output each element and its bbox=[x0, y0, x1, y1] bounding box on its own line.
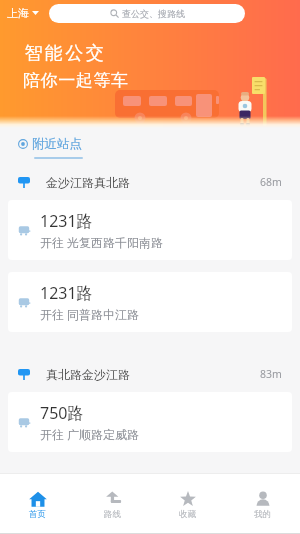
staticText: 1231路 bbox=[40, 210, 93, 232]
staticText: 83m bbox=[260, 367, 282, 381]
staticText: 68m bbox=[260, 175, 282, 189]
button[interactable]: 750路 bbox=[8, 392, 292, 452]
staticText: 金沙江路真北路 bbox=[46, 175, 130, 190]
staticText: 首页 bbox=[29, 509, 46, 520]
button[interactable]: 附近站点 bbox=[18, 136, 82, 152]
staticText: 路线 bbox=[104, 509, 121, 520]
button[interactable]: 上海 bbox=[0, 4, 43, 22]
staticText: 1231路 bbox=[40, 282, 93, 304]
staticText: 查公交、搜路线 bbox=[122, 8, 185, 19]
button[interactable]: 路线 bbox=[75, 474, 150, 533]
button[interactable]: 我的 bbox=[225, 474, 300, 533]
staticText: 开往 广顺路定威路 bbox=[40, 426, 140, 442]
button[interactable]: 金沙江路真北路 bbox=[0, 164, 300, 200]
staticText: 开往 同普路中江路 bbox=[40, 306, 140, 322]
button[interactable]: 首页 bbox=[0, 474, 75, 533]
staticText: 收藏 bbox=[179, 509, 196, 520]
staticText: 750路 bbox=[40, 402, 84, 424]
staticText: 智能公交 bbox=[23, 42, 105, 65]
staticText: 我的 bbox=[254, 509, 271, 520]
button[interactable]: 真北路金沙江路 bbox=[0, 356, 300, 392]
button[interactable]: 收藏 bbox=[150, 474, 225, 533]
staticText: 陪你一起等车 bbox=[23, 70, 129, 91]
staticText: 真北路金沙江路 bbox=[46, 367, 130, 382]
button[interactable]: 查公交、搜路线 bbox=[49, 4, 245, 23]
staticText: 开往 光复西路千阳南路 bbox=[40, 234, 164, 250]
staticText: 附近站点 bbox=[32, 136, 82, 152]
staticText: 上海 bbox=[7, 6, 29, 20]
button[interactable]: 1231路 bbox=[8, 272, 292, 332]
button[interactable]: 1231路 bbox=[8, 200, 292, 260]
